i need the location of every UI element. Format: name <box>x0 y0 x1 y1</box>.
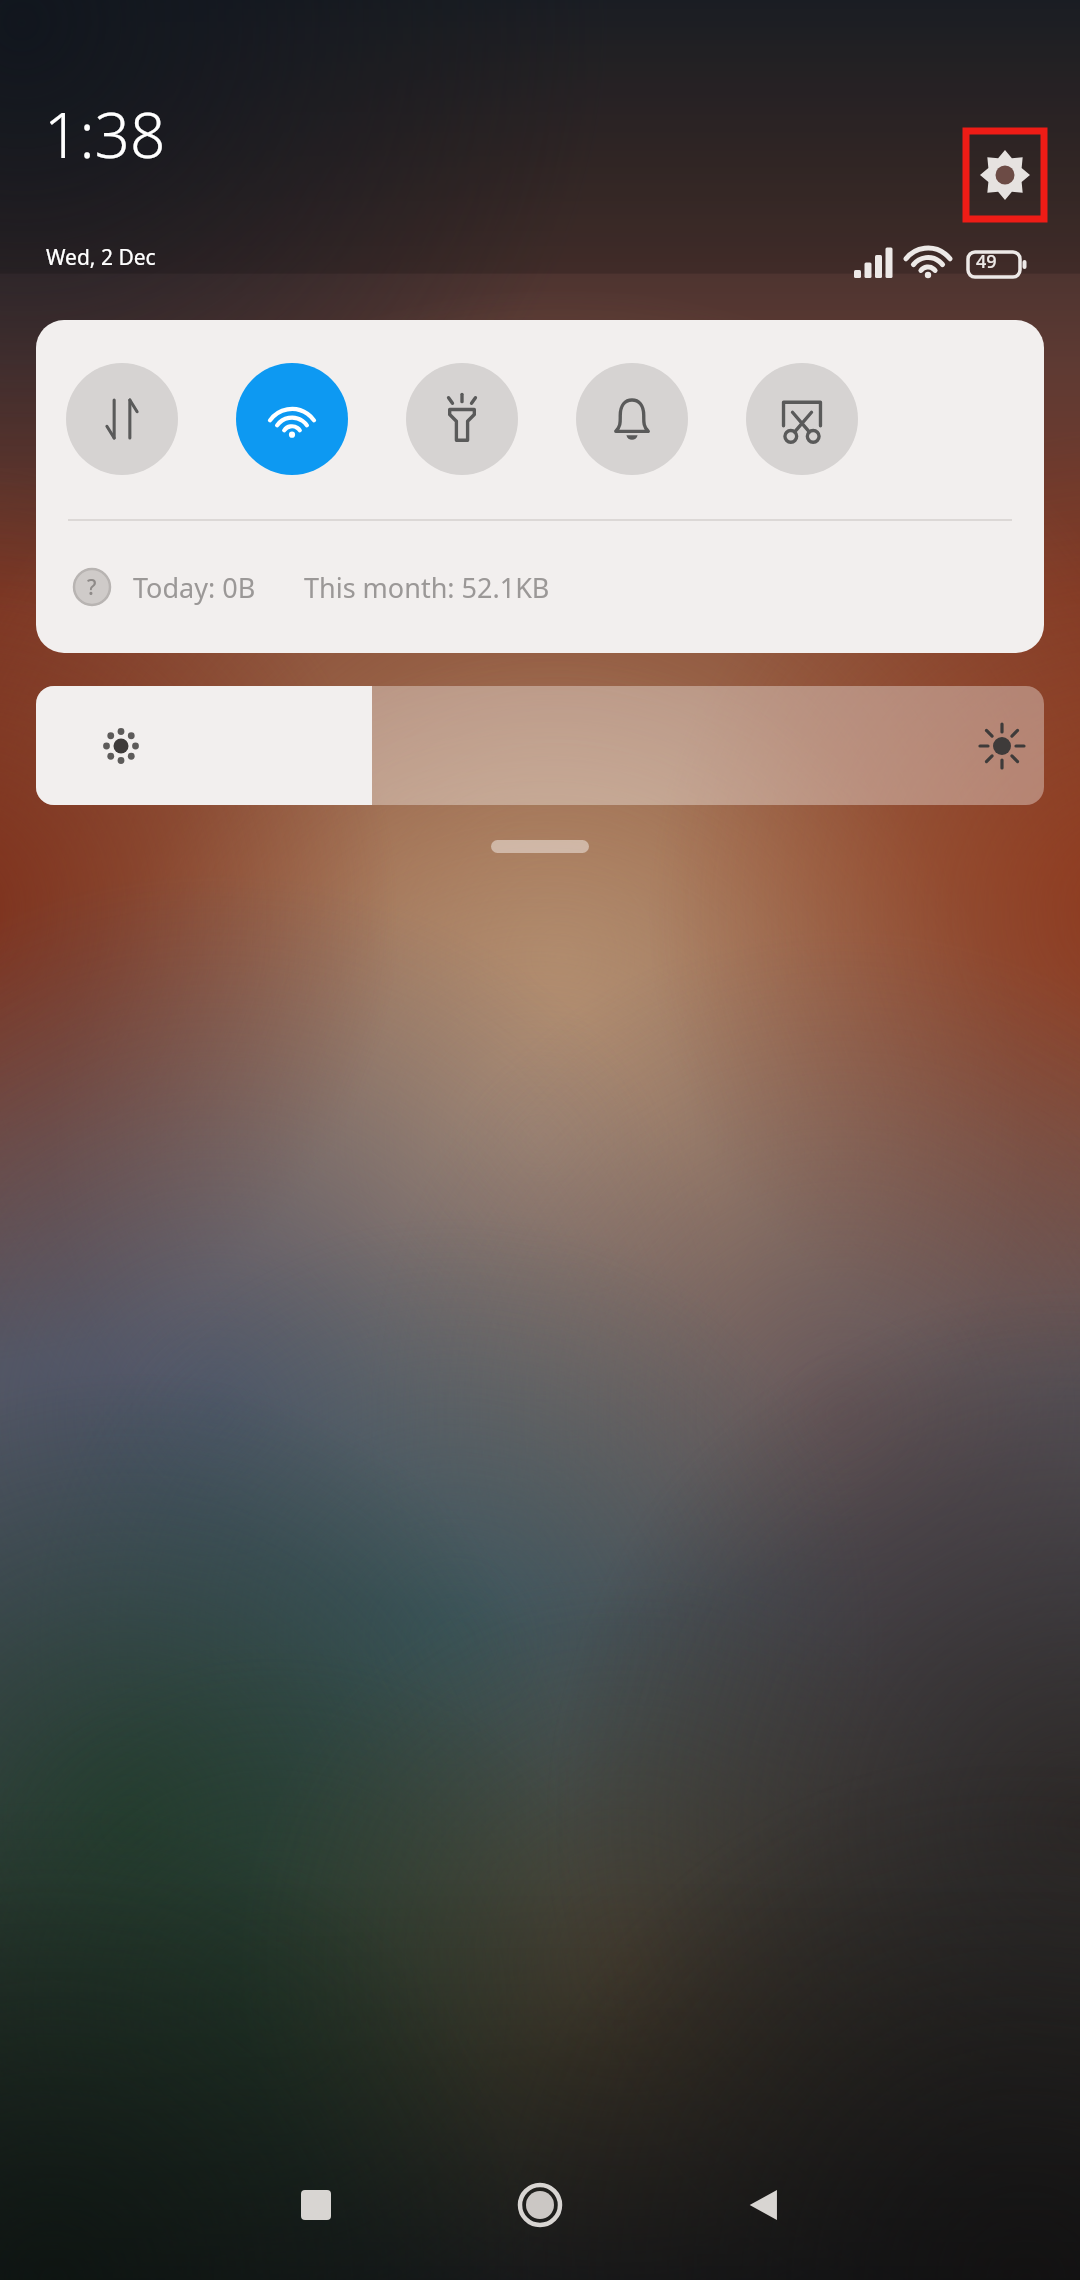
staticText: 1:38 <box>44 92 166 176</box>
button[interactable]: Notifications <box>576 363 688 475</box>
button[interactable]: ? <box>36 521 1044 653</box>
button[interactable]: Recents <box>276 2165 356 2245</box>
staticText: Wed, 2 Dec <box>46 243 156 272</box>
button[interactable]: Home <box>500 2165 580 2245</box>
button[interactable]: Settings <box>966 131 1044 219</box>
button[interactable]: Back <box>724 2165 804 2245</box>
button[interactable]: Screenshot <box>746 363 858 475</box>
staticText: Today: 0B <box>133 569 256 606</box>
staticText: This month: 52.1KB <box>304 569 550 606</box>
button[interactable]: Mobile data <box>66 363 178 475</box>
button[interactable]: Brightness <box>36 686 1044 805</box>
button[interactable]: Flashlight <box>406 363 518 475</box>
button[interactable]: Expand <box>491 840 589 853</box>
staticText: ? <box>87 573 97 602</box>
staticText: 49 <box>976 249 997 274</box>
button[interactable]: Wi-Fi <box>236 363 348 475</box>
